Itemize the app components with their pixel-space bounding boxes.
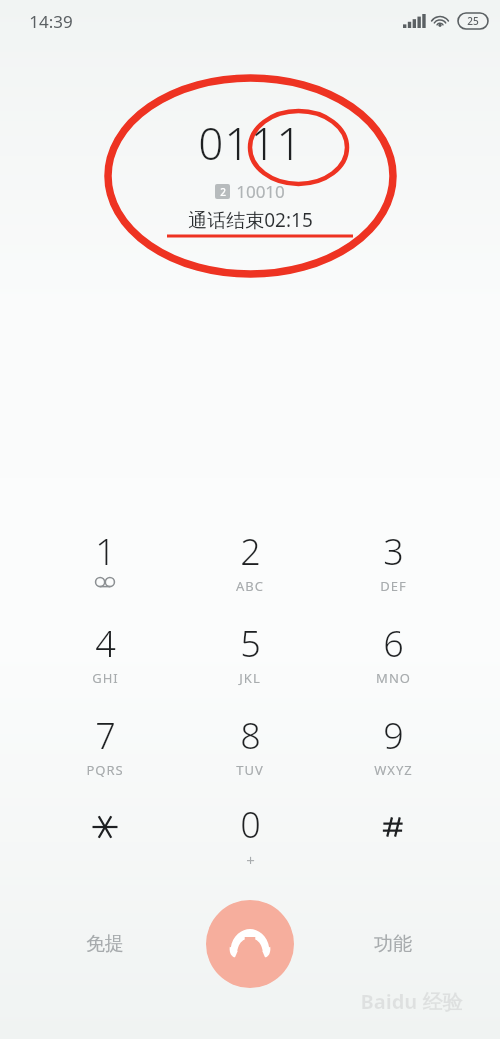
staticText: 10010 (236, 180, 285, 203)
staticText: 9 (383, 711, 404, 760)
staticText: WXYZ (374, 761, 413, 779)
button[interactable]: 9 (345, 711, 441, 791)
staticText: TUV (236, 761, 264, 779)
staticText: + (246, 850, 256, 870)
staticText: 0111 (198, 113, 303, 173)
staticText: 免提 (86, 932, 124, 956)
staticText: 7 (95, 711, 116, 760)
button[interactable]: 3 (345, 527, 441, 607)
staticText: 8 (240, 711, 261, 760)
staticText: 3 (383, 527, 404, 576)
staticText: 5 (240, 619, 261, 668)
button[interactable] (57, 800, 153, 880)
staticText: JKL (239, 669, 261, 687)
staticText: 2 (220, 185, 226, 199)
button[interactable]: 7 (57, 711, 153, 791)
staticText: MNO (376, 669, 411, 687)
staticText: GHI (92, 669, 119, 687)
staticText: DEF (380, 577, 407, 595)
button[interactable]: 6 (345, 619, 441, 699)
staticText: 2 (240, 527, 261, 576)
staticText: 4 (95, 619, 116, 668)
staticText: 通话结束02:15 (188, 207, 313, 233)
staticText: 功能 (374, 932, 412, 956)
staticText: 1 (95, 527, 116, 576)
button[interactable]: 4 (57, 619, 153, 699)
button[interactable]: 功能 (348, 916, 438, 972)
button[interactable]: 5 (202, 619, 298, 699)
button[interactable]: End call (206, 900, 294, 988)
staticText: ABC (236, 577, 264, 595)
staticText: 6 (383, 619, 404, 668)
staticText: 14:39 (29, 10, 73, 33)
button[interactable] (345, 800, 441, 880)
staticText: 25 (467, 14, 479, 28)
button[interactable]: 免提 (60, 916, 150, 972)
button[interactable]: 2 (202, 527, 298, 607)
button[interactable]: 8 (202, 711, 298, 791)
button[interactable]: 1 (57, 527, 153, 607)
staticText: 0 (240, 800, 261, 849)
button[interactable]: 0 (202, 800, 298, 880)
staticText: PQRS (86, 761, 124, 779)
staticText: Baidu 经验 (360, 988, 463, 1015)
